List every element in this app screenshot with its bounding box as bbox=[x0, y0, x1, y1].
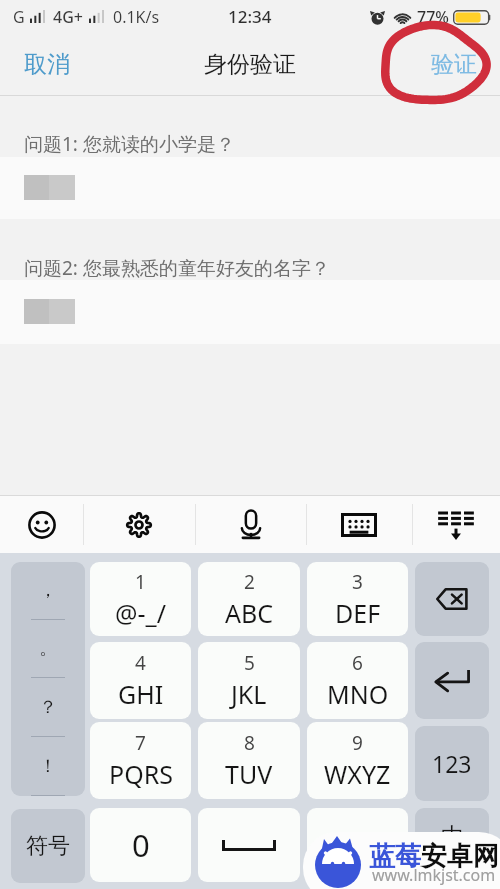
button[interactable]: 1 bbox=[90, 562, 191, 636]
staticText: 。 bbox=[39, 637, 57, 660]
button[interactable]: ， bbox=[11, 562, 85, 796]
staticText: ABC bbox=[225, 596, 274, 630]
staticText: www.lmkjst.com bbox=[372, 864, 496, 886]
button[interactable]: 7 bbox=[90, 722, 191, 799]
staticText: 取消 bbox=[24, 50, 70, 79]
button[interactable]: Enter bbox=[415, 642, 489, 719]
button[interactable]: Emoji bbox=[0, 496, 83, 553]
button[interactable]: 5 bbox=[198, 642, 300, 719]
staticText: 问题2: 您最熟悉的童年好友的名字？ bbox=[24, 255, 330, 281]
staticText: 6 bbox=[352, 650, 363, 676]
staticText: JKL bbox=[231, 677, 267, 711]
button[interactable]: 4 bbox=[90, 642, 191, 719]
button[interactable]: 8 bbox=[198, 722, 300, 799]
staticText: 7 bbox=[135, 730, 146, 756]
staticText: 身份验证 bbox=[204, 50, 296, 79]
staticText: WXYZ bbox=[324, 757, 391, 791]
button[interactable]: 9 bbox=[307, 722, 408, 799]
staticText: 0.1K/s bbox=[113, 6, 160, 28]
button[interactable]: 取消 bbox=[0, 33, 88, 95]
button[interactable]: 中 bbox=[415, 808, 489, 882]
staticText: G bbox=[13, 6, 25, 28]
staticText: ， bbox=[39, 579, 57, 602]
staticText: 12:34 bbox=[228, 5, 272, 28]
staticText: 安卓网 bbox=[421, 840, 499, 873]
button[interactable]: 6 bbox=[307, 642, 408, 719]
staticText: 4G+ bbox=[53, 6, 83, 28]
button[interactable]: 2 bbox=[198, 562, 300, 636]
button[interactable]: 符号 bbox=[11, 809, 85, 883]
staticText: GHI bbox=[118, 677, 164, 711]
staticText: 0 bbox=[132, 824, 150, 866]
staticText: 2 bbox=[244, 569, 255, 595]
staticText: 123 bbox=[432, 748, 472, 779]
staticText: ！ bbox=[39, 755, 57, 778]
staticText: 中 bbox=[441, 822, 464, 851]
button[interactable]: 3 bbox=[307, 562, 408, 636]
button[interactable]: Hide keyboard bbox=[412, 496, 500, 553]
staticText: 3 bbox=[352, 569, 363, 595]
button[interactable]: 0 bbox=[90, 808, 191, 882]
staticText: MNO bbox=[327, 677, 389, 711]
button[interactable]: 123 bbox=[415, 726, 489, 801]
button[interactable]: Period bbox=[307, 808, 408, 882]
staticText: 5 bbox=[244, 650, 255, 676]
staticText: PQRS bbox=[109, 757, 173, 791]
staticText: 问题1: 您就读的小学是？ bbox=[24, 131, 235, 157]
button[interactable]: Voice input bbox=[195, 496, 306, 553]
staticText: 8 bbox=[244, 730, 255, 756]
staticText: 符号 bbox=[26, 832, 70, 860]
staticText: 蓝莓 bbox=[369, 840, 421, 873]
staticText: 1 bbox=[135, 569, 146, 595]
staticText: 4 bbox=[135, 650, 146, 676]
staticText: TUV bbox=[225, 757, 273, 791]
staticText: 9 bbox=[352, 730, 363, 756]
button[interactable]: Keyboard layout bbox=[306, 496, 412, 553]
staticText: DEF bbox=[335, 596, 381, 630]
staticText: 验证 bbox=[431, 50, 477, 79]
button[interactable]: Backspace bbox=[415, 562, 489, 636]
button[interactable]: Space bbox=[198, 808, 300, 882]
button[interactable]: 验证 bbox=[413, 33, 500, 95]
staticText: ？ bbox=[39, 696, 57, 719]
staticText: @-_/ bbox=[115, 596, 166, 630]
staticText: 77% bbox=[417, 6, 449, 28]
button[interactable]: Settings bbox=[83, 496, 195, 553]
